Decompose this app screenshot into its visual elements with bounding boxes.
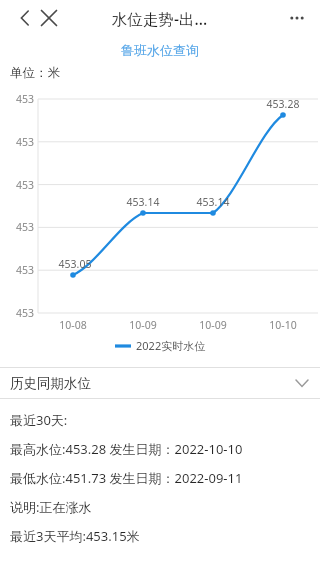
button[interactable]: 鲁班水位查询 <box>0 42 320 58</box>
button[interactable]: More options <box>280 1 314 35</box>
staticText: 说明:正在涨水 <box>10 498 92 516</box>
staticText: 最高水位:453.28 发生日期：2022-10-10 <box>10 440 243 458</box>
staticText: 453.14 <box>121 195 165 209</box>
staticText: 水位走势-出... <box>112 8 208 29</box>
staticText: 最近30天: <box>10 411 68 429</box>
staticText: 453 <box>0 135 34 149</box>
staticText: 453 <box>0 220 34 234</box>
staticText: 10-09 <box>121 318 165 332</box>
staticText: 2022实时水位 <box>136 338 206 353</box>
staticText: 10-10 <box>261 318 305 332</box>
staticText: 453.14 <box>191 195 235 209</box>
staticText: 453 <box>0 92 34 106</box>
staticText: 453.05 <box>53 257 97 271</box>
staticText: 453.28 <box>261 97 305 111</box>
button[interactable]: 2022实时水位 <box>115 338 206 353</box>
button[interactable]: 历史同期水位 <box>0 368 320 398</box>
staticText: 最低水位:451.73 发生日期：2022-09-11 <box>10 469 243 487</box>
staticText: 单位：米 <box>10 65 60 81</box>
staticText: 最近3天平均:453.15米 <box>10 527 140 545</box>
button[interactable]: Back <box>8 1 42 35</box>
staticText: 历史同期水位 <box>10 375 91 392</box>
staticText: 10-08 <box>51 318 95 332</box>
button[interactable]: Close <box>32 1 66 35</box>
staticText: 453 <box>0 178 34 192</box>
staticText: 453 <box>0 306 34 320</box>
staticText: 453 <box>0 263 34 277</box>
staticText: 10-09 <box>191 318 235 332</box>
